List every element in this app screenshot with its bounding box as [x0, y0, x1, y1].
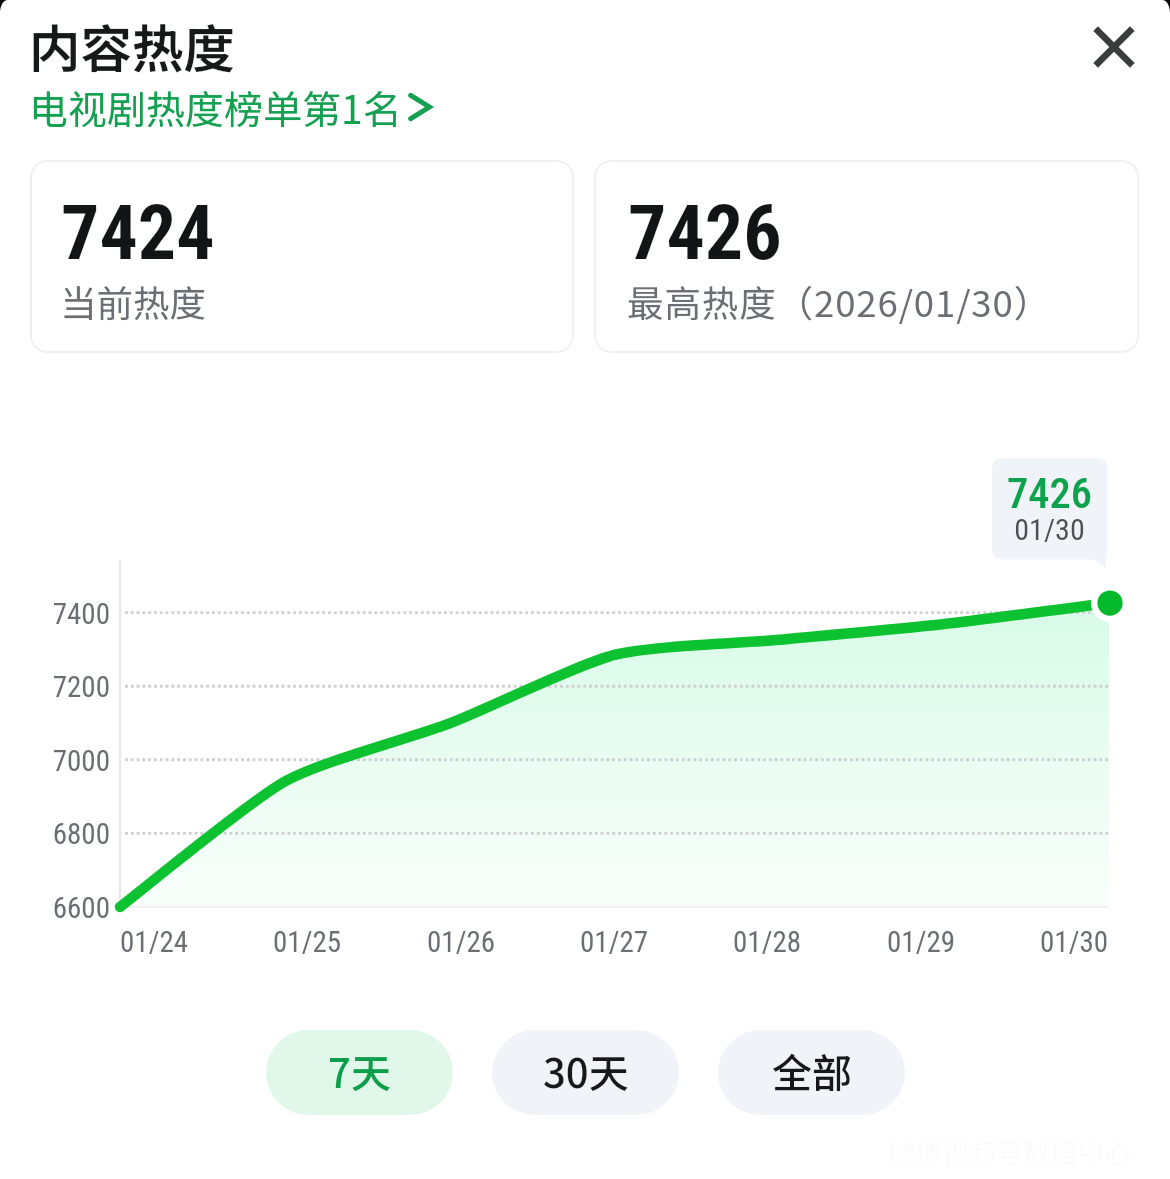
- staticText: 7400: [30, 597, 110, 631]
- staticText: 01/30: [992, 512, 1107, 547]
- staticText: 30天: [543, 1042, 629, 1100]
- staticText: 01/25: [273, 925, 342, 959]
- button[interactable]: 全部: [718, 1030, 905, 1115]
- button[interactable]: 30天: [492, 1030, 679, 1115]
- staticText: 最高热度（2026/01/30）: [627, 275, 1052, 328]
- staticText: 7426: [992, 469, 1107, 519]
- staticText: 7424: [61, 188, 215, 277]
- staticText: 01/28: [733, 925, 802, 959]
- staticText: 电视剧热度榜单第1名: [29, 79, 402, 135]
- staticText: 7000: [30, 744, 110, 778]
- button[interactable]: 7424: [30, 160, 574, 353]
- staticText: 01/24: [120, 925, 189, 959]
- staticText: 7426: [628, 188, 782, 277]
- button[interactable]: 7426: [594, 160, 1139, 353]
- staticText: 7天: [328, 1042, 391, 1100]
- staticText: 6800: [30, 817, 110, 851]
- staticText: 当前热度: [60, 275, 206, 328]
- staticText: 内容热度: [29, 8, 236, 83]
- staticText: 01/29: [887, 925, 956, 959]
- button[interactable]: Close: [1077, 10, 1151, 84]
- staticText: 全部: [772, 1042, 852, 1100]
- staticText: 6600: [30, 891, 110, 925]
- button[interactable]: 7天: [266, 1030, 453, 1115]
- staticText: 7200: [30, 670, 110, 704]
- staticText: 01/27: [580, 925, 649, 959]
- staticText: 01/26: [427, 925, 496, 959]
- button[interactable]: 电视剧热度榜单第1名: [29, 79, 447, 135]
- staticText: 01/30: [1040, 925, 1109, 959]
